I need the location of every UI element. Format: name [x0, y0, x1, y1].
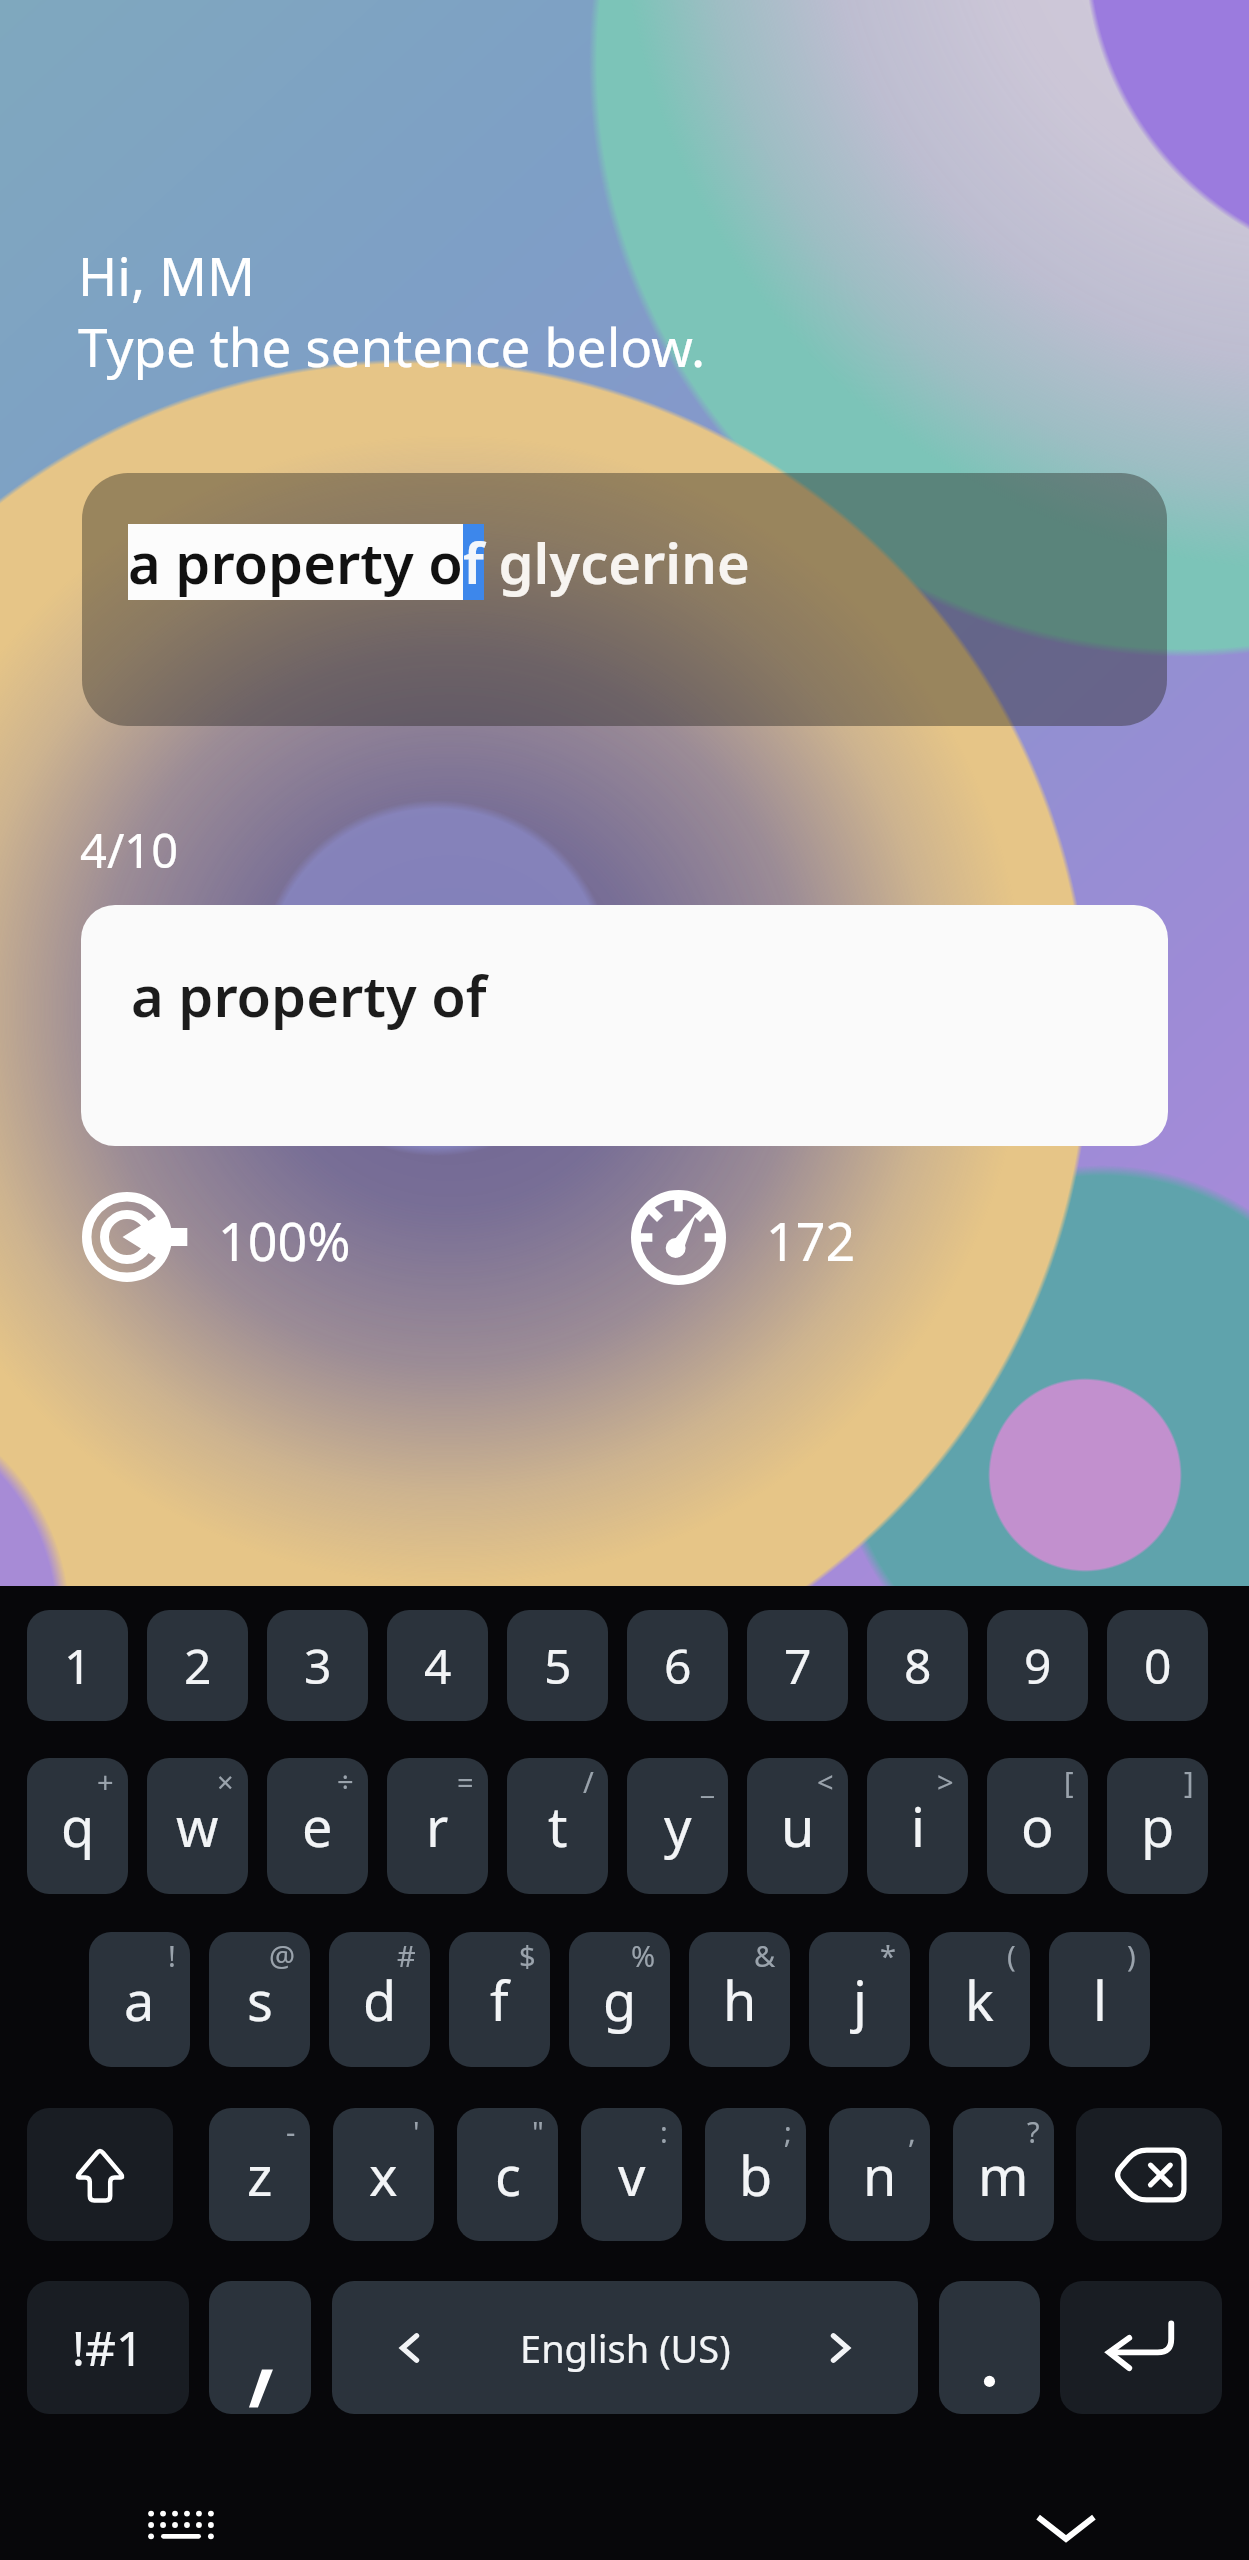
button[interactable]: _ — [627, 1758, 728, 1894]
staticText: ' — [413, 2112, 420, 2151]
button[interactable]: : — [581, 2108, 682, 2241]
button[interactable]: Shift — [27, 2108, 173, 2241]
staticText: q — [61, 1789, 95, 1863]
staticText: % — [631, 1936, 656, 1975]
button[interactable]: < — [747, 1758, 848, 1894]
button[interactable]: 0 — [1107, 1610, 1208, 1721]
button[interactable]: - — [209, 2108, 310, 2241]
button[interactable]: Comma — [209, 2281, 311, 2414]
button[interactable]: + — [27, 1758, 128, 1894]
button[interactable]: * — [809, 1932, 910, 2067]
staticText: / — [583, 1762, 594, 1801]
button[interactable]: # — [329, 1932, 430, 2067]
button[interactable]: Backspace — [1076, 2108, 1222, 2241]
staticText: ( — [1007, 1936, 1016, 1975]
staticText: @ — [269, 1936, 296, 1975]
staticText: $ — [519, 1936, 536, 1975]
staticText: b — [739, 2138, 773, 2212]
button[interactable]: / — [507, 1758, 608, 1894]
staticText: k — [965, 1963, 994, 2037]
button[interactable]: = — [387, 1758, 488, 1894]
button[interactable]: 6 — [627, 1610, 728, 1721]
staticText: & — [754, 1936, 776, 1975]
staticText: m — [978, 2138, 1029, 2212]
staticText: x — [369, 2138, 398, 2212]
button[interactable]: ) — [1049, 1932, 1150, 2067]
button[interactable]: ] — [1107, 1758, 1208, 1894]
staticText: d — [363, 1963, 397, 2037]
staticText: 6 — [664, 1633, 692, 1698]
button[interactable]: 1 — [27, 1610, 128, 1721]
button[interactable]: Accuracy — [82, 1192, 186, 1282]
button[interactable]: a property o — [82, 473, 1167, 726]
staticText: < — [817, 1762, 834, 1801]
staticText: # — [397, 1936, 416, 1975]
button[interactable]: ; — [705, 2108, 806, 2241]
button[interactable]: % — [569, 1932, 670, 2067]
button[interactable]: English (US) — [332, 2281, 918, 2414]
staticText: w — [176, 1789, 219, 1863]
button[interactable]: 4 — [387, 1610, 488, 1721]
staticText: 0 — [1144, 1633, 1172, 1698]
staticText: t — [548, 1789, 568, 1863]
button[interactable]: 9 — [987, 1610, 1088, 1721]
button[interactable]: 8 — [867, 1610, 968, 1721]
staticText: c — [495, 2138, 521, 2212]
staticText: g — [603, 1963, 637, 2037]
staticText: 7 — [784, 1633, 812, 1698]
staticText: n — [863, 2138, 897, 2212]
button[interactable]: " — [457, 2108, 558, 2241]
staticText: a property of — [131, 957, 487, 1033]
staticText: j — [853, 1963, 867, 2037]
staticText: r — [426, 1789, 449, 1863]
staticText: = — [457, 1762, 474, 1801]
staticText: a property o — [128, 524, 463, 600]
button[interactable]: 3 — [267, 1610, 368, 1721]
button[interactable]: × — [147, 1758, 248, 1894]
button[interactable]: ? — [953, 2108, 1054, 2241]
button[interactable]: > — [867, 1758, 968, 1894]
button[interactable]: Change keyboard — [135, 2484, 227, 2560]
staticText: i — [911, 1789, 925, 1863]
button[interactable]: ! — [89, 1932, 190, 2067]
button[interactable]: Enter — [1060, 2281, 1222, 2414]
staticText: p — [1141, 1789, 1175, 1863]
staticText: v — [618, 2138, 646, 2212]
staticText: 9 — [1024, 1633, 1052, 1698]
button[interactable]: , — [829, 2108, 930, 2241]
staticText: a — [124, 1963, 155, 2037]
staticText: s — [247, 1963, 273, 2037]
staticText: : — [660, 2112, 668, 2151]
button[interactable]: & — [689, 1932, 790, 2067]
staticText: 3 — [304, 1633, 332, 1698]
staticText: 4 — [424, 1633, 452, 1698]
button[interactable]: [ — [987, 1758, 1088, 1894]
button[interactable]: !#1 — [27, 2281, 189, 2414]
button[interactable]: Hide keyboard — [1020, 2484, 1112, 2560]
staticText: × — [217, 1762, 234, 1801]
staticText: ) — [1127, 1936, 1136, 1975]
staticText: 4/10 — [80, 818, 179, 882]
button[interactable]: Period — [939, 2281, 1040, 2414]
button[interactable]: 2 — [147, 1610, 248, 1721]
staticText: l — [1093, 1963, 1107, 2037]
button[interactable]: $ — [449, 1932, 550, 2067]
staticText: 100% — [218, 1205, 351, 1276]
button[interactable]: 5 — [507, 1610, 608, 1721]
staticText: f — [463, 524, 484, 600]
button[interactable]: Speed — [631, 1190, 726, 1285]
staticText: English (US) — [520, 2322, 731, 2374]
staticText: " — [532, 2112, 544, 2151]
button[interactable]: 7 — [747, 1610, 848, 1721]
staticText: _ — [701, 1762, 714, 1801]
button[interactable]: ÷ — [267, 1758, 368, 1894]
button[interactable]: @ — [209, 1932, 310, 2067]
button[interactable]: ( — [929, 1932, 1030, 2067]
button[interactable]: ' — [333, 2108, 434, 2241]
button[interactable]: a property of — [81, 905, 1168, 1146]
staticText: + — [97, 1762, 114, 1801]
staticText: 1 — [64, 1633, 92, 1698]
staticText: z — [247, 2138, 273, 2212]
staticText: 172 — [766, 1205, 856, 1276]
staticText: e — [302, 1789, 333, 1863]
